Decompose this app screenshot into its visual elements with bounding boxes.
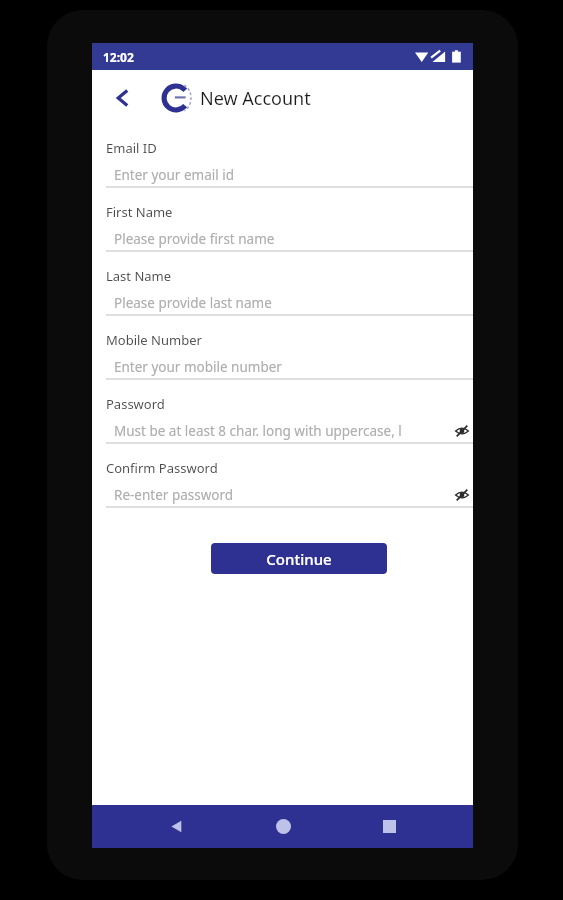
button[interactable]: Toggle password visibility xyxy=(451,484,473,506)
staticText: Enter your mobile number xyxy=(114,358,282,376)
button[interactable]: Confirm Password xyxy=(106,459,473,523)
button[interactable]: Home xyxy=(261,805,305,848)
button[interactable]: Back xyxy=(154,805,198,848)
button[interactable]: Back xyxy=(100,74,148,122)
staticText: Please provide last name xyxy=(114,294,272,312)
staticText: Must be at least 8 char. long with upper… xyxy=(114,422,402,440)
staticText: New Account xyxy=(200,86,311,111)
button[interactable]: Recent apps xyxy=(367,805,411,848)
staticText: 12:02 xyxy=(103,49,134,65)
button[interactable]: Last Name xyxy=(106,267,473,331)
button[interactable]: Mobile Number xyxy=(106,331,473,395)
button[interactable]: First Name xyxy=(106,203,473,267)
button[interactable]: Continue xyxy=(211,543,387,574)
staticText: Enter your email id xyxy=(114,166,234,184)
staticText: First Name xyxy=(106,203,173,221)
button[interactable]: Toggle password visibility xyxy=(451,420,473,442)
staticText: Email ID xyxy=(106,139,157,157)
staticText: Mobile Number xyxy=(106,331,202,349)
button[interactable]: Password xyxy=(106,395,473,459)
staticText: Re-enter password xyxy=(114,486,234,504)
staticText: Continue xyxy=(266,549,332,569)
staticText: Password xyxy=(106,395,165,413)
button[interactable]: Email ID xyxy=(106,139,473,203)
staticText: Confirm Password xyxy=(106,459,218,477)
staticText: Last Name xyxy=(106,267,172,285)
staticText: Please provide first name xyxy=(114,230,275,248)
